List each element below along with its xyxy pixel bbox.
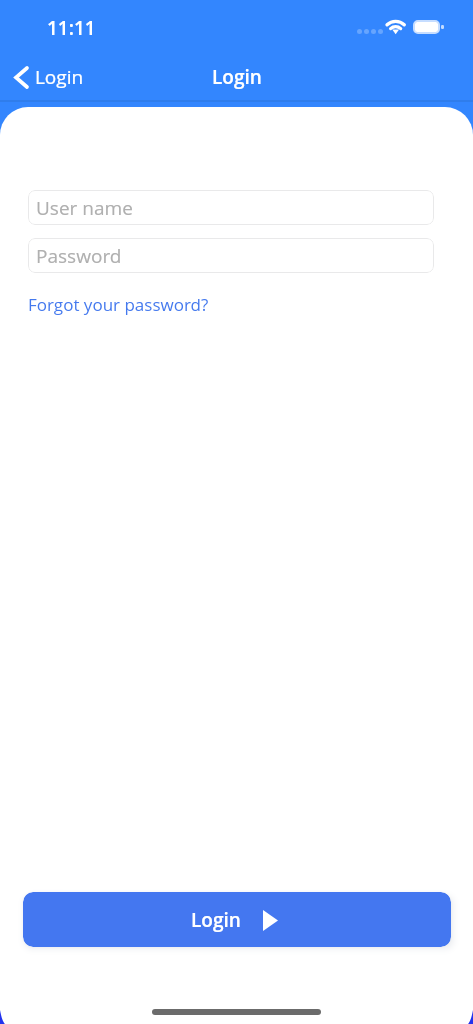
button[interactable]: Login [23, 892, 451, 947]
button[interactable]: Password [28, 238, 434, 273]
staticText: 11:11 [47, 15, 96, 41]
staticText: Login [35, 64, 84, 90]
staticText: User name [36, 195, 133, 221]
button[interactable]: Forgot your password? [28, 293, 209, 316]
staticText: Forgot your password? [28, 293, 209, 316]
staticText: Login [191, 907, 241, 933]
button[interactable]: User name [28, 190, 434, 225]
button[interactable]: Login [0, 58, 94, 96]
staticText: Password [36, 243, 122, 269]
other: Battery full [413, 20, 440, 34]
staticText: Login [212, 64, 262, 90]
other: Wi-Fi [384, 17, 408, 37]
